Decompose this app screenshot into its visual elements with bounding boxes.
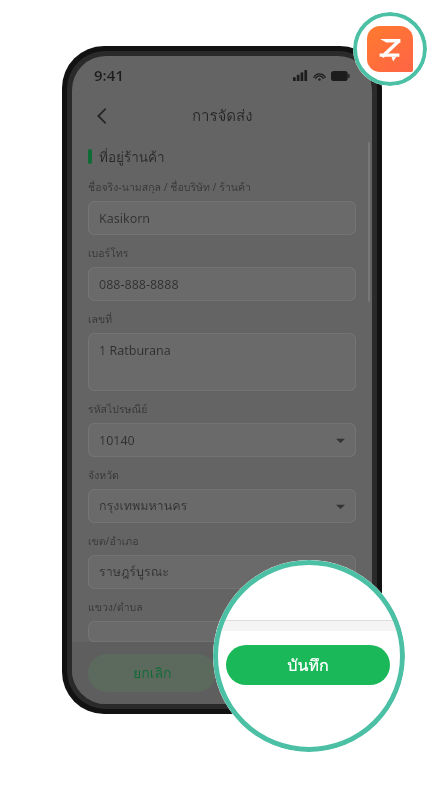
button[interactable]: 1 Ratburana (88, 333, 356, 391)
staticText: ราษฎร์บูรณะ (99, 562, 170, 582)
staticText: ยกเลิก (133, 662, 172, 684)
button[interactable]: App logo (353, 12, 427, 86)
staticText: 1 Ratburana (99, 342, 171, 359)
staticText: 10140 (99, 432, 135, 449)
staticText: การจัดส่ง (192, 104, 253, 128)
staticText: ที่อยู่ร้านค้า (99, 146, 165, 167)
button[interactable]: ยกเลิก (88, 654, 216, 692)
staticText: แขวง/ตำบล (88, 599, 143, 616)
staticText: 088-888-8888 (99, 276, 179, 293)
button[interactable]: กรุงเทพมหานคร (88, 489, 356, 523)
staticText: บันทึก (287, 653, 329, 678)
button[interactable]: 10140 (88, 423, 356, 457)
staticText: จังหวัด (88, 467, 119, 484)
staticText: กรุงเทพมหานคร (99, 496, 188, 516)
button[interactable] (88, 621, 356, 642)
button[interactable]: บันทึก (228, 654, 356, 692)
staticText: บันทึก (274, 662, 311, 684)
button[interactable]: ราษฎร์บูรณะ (88, 555, 356, 589)
button[interactable]: Kasikorn (88, 201, 356, 235)
staticText: 9:41 (94, 65, 124, 85)
staticText: เบอร์โทร (88, 245, 129, 262)
button[interactable]: 088-888-8888 (88, 267, 356, 301)
staticText: ชื่อจริง-นามสกุล / ชื่อบริษัท / ร้านค้า (88, 179, 251, 196)
button[interactable]: บันทึก (226, 645, 390, 685)
staticText: เขต/อำเภอ (88, 533, 139, 550)
staticText: เลขที่ (88, 311, 113, 328)
button[interactable]: Back (82, 96, 122, 136)
staticText: Kasikorn (99, 210, 151, 227)
staticText: รหัสไปรษณีย์ (88, 401, 148, 418)
